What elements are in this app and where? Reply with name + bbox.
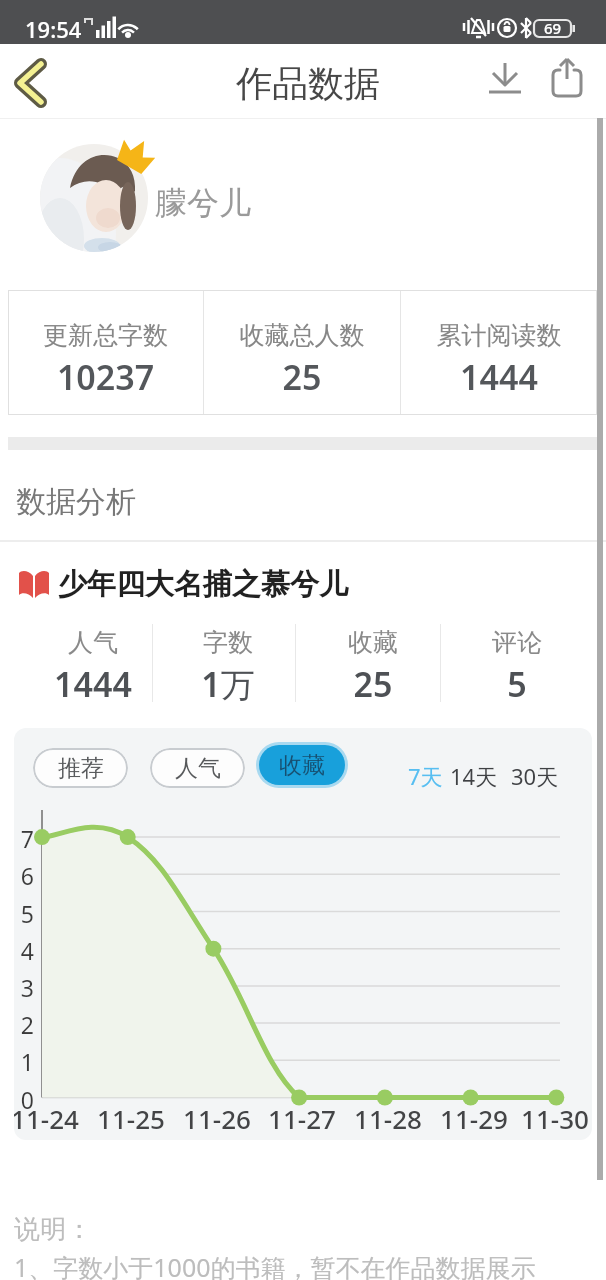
staticText: 数据分析 xyxy=(16,483,136,521)
staticText: 1、字数小于1000的书籍，暂不在作品数据展示 xyxy=(14,1250,536,1280)
staticText: 说明： xyxy=(14,1213,92,1246)
staticText: 推荐 xyxy=(58,754,104,783)
staticText: 25 xyxy=(204,354,400,400)
staticText: 11-27 xyxy=(266,1101,338,1136)
button[interactable] xyxy=(8,56,60,108)
staticText: 2 xyxy=(16,1009,34,1040)
staticText: 1444 xyxy=(401,354,597,400)
staticText: 收藏 xyxy=(303,627,443,658)
staticText: 1万 xyxy=(158,661,298,707)
staticText: 6 xyxy=(16,860,34,891)
button[interactable] xyxy=(546,57,592,105)
staticText: 11-30 xyxy=(519,1101,591,1136)
staticText: 5 xyxy=(16,898,34,929)
staticText: 11-25 xyxy=(95,1101,167,1136)
staticText: 19:54 xyxy=(25,14,82,44)
button[interactable]: 少年四大名捕之慕兮儿 xyxy=(18,566,348,603)
staticText: 人气 xyxy=(175,754,221,783)
staticText: 11-26 xyxy=(181,1101,253,1136)
staticText: 朦兮儿 xyxy=(155,183,251,223)
staticText: 7 xyxy=(16,823,34,854)
staticText: 11-28 xyxy=(352,1101,424,1136)
button[interactable] xyxy=(40,144,148,252)
button[interactable]: 字数 xyxy=(158,618,298,706)
staticText: 1 xyxy=(16,1046,34,1077)
staticText: 25 xyxy=(303,661,443,707)
button[interactable]: 推荐 xyxy=(33,748,128,788)
button[interactable]: 收藏总人数 xyxy=(204,290,400,415)
button[interactable]: 收藏 xyxy=(259,745,345,785)
staticText: 10237 xyxy=(8,354,203,400)
staticText: 4 xyxy=(16,935,34,966)
staticText: 收藏 xyxy=(279,751,325,780)
button[interactable]: 人气 xyxy=(150,748,245,788)
button[interactable]: 30天 xyxy=(511,761,559,791)
staticText: 3 xyxy=(16,972,34,1003)
staticText: 11-29 xyxy=(438,1101,510,1136)
staticText: 作品数据 xyxy=(5,61,606,106)
button[interactable]: 累计阅读数 xyxy=(401,290,597,415)
staticText: 5 xyxy=(447,661,587,707)
staticText: 评论 xyxy=(447,627,587,658)
button[interactable]: 更新总字数 xyxy=(8,290,203,415)
staticText: 1444 xyxy=(23,661,163,707)
staticText: 更新总字数 xyxy=(8,320,203,351)
button[interactable]: 评论 xyxy=(447,618,587,706)
staticText: 字数 xyxy=(158,627,298,658)
staticText: 0 xyxy=(16,1084,34,1115)
staticText: 收藏总人数 xyxy=(204,320,400,351)
button[interactable]: 7天 xyxy=(408,761,443,791)
staticText: 累计阅读数 xyxy=(401,320,597,351)
staticText: 69 xyxy=(533,18,572,38)
button[interactable]: 人气 xyxy=(23,618,163,706)
staticText: 人气 xyxy=(23,627,163,658)
button[interactable]: 收藏 xyxy=(303,618,443,706)
staticText: 11-24 xyxy=(14,1101,81,1136)
staticText: 少年四大名捕之慕兮儿 xyxy=(58,566,348,603)
button[interactable] xyxy=(484,60,528,104)
button[interactable]: 14天 xyxy=(450,761,498,791)
